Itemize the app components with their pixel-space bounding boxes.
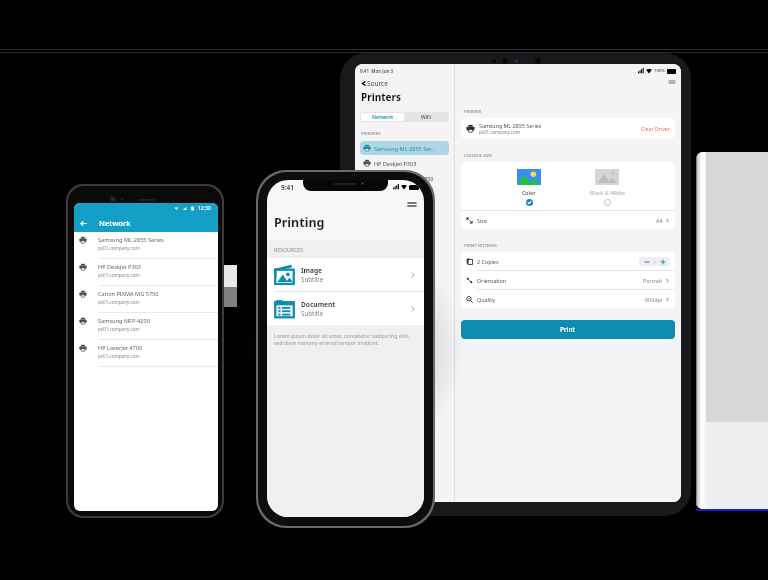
button[interactable]: Orientation	[461, 271, 675, 289]
button[interactable]: Black & White	[568, 162, 646, 206]
button[interactable]: Clear Driver	[641, 125, 670, 132]
staticText: A4	[656, 217, 663, 224]
staticText: 9:41	[281, 183, 294, 192]
button[interactable]: Canon PIXMA MG 5750	[360, 171, 449, 185]
button[interactable]: Decrease copies	[639, 257, 654, 266]
staticText: Lorem ipsum dolor sit amet, consetetur s…	[274, 332, 410, 346]
button[interactable]: Increase copies	[655, 257, 670, 266]
button[interactable]: Document	[267, 292, 424, 325]
staticText: ps01.company.com	[98, 353, 140, 359]
staticText: Black & White	[590, 189, 625, 196]
button[interactable]: HP DeskJet P303	[74, 259, 218, 285]
button[interactable]: Size	[461, 211, 675, 229]
staticText: HP LaserJet 4700	[98, 344, 143, 352]
staticText: Printers	[361, 90, 401, 104]
staticText: ps01.company.com	[479, 129, 520, 135]
staticText: 12:30	[198, 205, 211, 212]
staticText: Samsung ML-2855 Series	[98, 236, 164, 244]
button[interactable]: Back	[77, 217, 89, 229]
button[interactable]: Print	[461, 320, 675, 339]
staticText: PRINT SETTINGS	[464, 243, 497, 249]
staticText: Subtitle	[301, 275, 324, 283]
staticText: Samsung ML-2855 Series	[479, 122, 542, 129]
staticText: Canon PIXMA MG 5750	[374, 175, 434, 182]
staticText: Color	[522, 189, 536, 196]
button[interactable]: Network	[361, 113, 404, 121]
staticText: COLOR & SIZE	[464, 153, 492, 159]
staticText: Quality	[477, 296, 496, 303]
staticText: 600dpi	[645, 296, 663, 303]
button[interactable]: Samsung ML-2855 Series	[461, 118, 675, 139]
staticText: Print	[560, 325, 576, 334]
button[interactable]: HP LaserJet 4700	[74, 340, 218, 366]
staticText: Image	[301, 266, 323, 275]
staticText: HP DeskJet P303	[98, 263, 142, 271]
button[interactable]: Source	[360, 79, 388, 88]
staticText: Samsung MFP-4200	[98, 317, 150, 325]
staticText: Size	[477, 217, 487, 224]
staticText: Network	[99, 218, 131, 228]
button[interactable]: WiFi	[404, 113, 448, 121]
staticText: ps01.company.com	[98, 299, 140, 305]
staticText: Network	[372, 114, 394, 121]
staticText: PRINTERS	[361, 131, 381, 137]
staticText: Samsung ML-2855 Ser...	[374, 145, 436, 152]
button[interactable]: More options	[667, 77, 676, 86]
button[interactable]: Canon PIXMA MG 5750	[74, 286, 218, 312]
button[interactable]: HP DeskJet P303	[360, 156, 449, 170]
staticText: 100%	[654, 68, 665, 74]
staticText: ps01.company.com	[98, 245, 140, 251]
staticText: HP DeskJet P303	[374, 160, 417, 167]
staticText: 2 Copies	[477, 258, 499, 265]
staticText: 9:41 Mon Jun 3	[360, 68, 394, 74]
staticText: Portrait	[643, 277, 663, 284]
button[interactable]: Image	[267, 258, 424, 291]
button[interactable]: Menu	[406, 198, 418, 210]
button[interactable]: 2 Copies	[461, 252, 675, 270]
button[interactable]: Color	[490, 162, 568, 206]
button[interactable]: Samsung MFP-4200	[74, 313, 218, 339]
staticText: ps01.company.com	[98, 272, 140, 278]
staticText: ps01.company.com	[98, 326, 140, 332]
staticText: Printing	[274, 214, 325, 231]
staticText: Orientation	[477, 277, 507, 284]
staticText: RESOURCES	[274, 246, 304, 253]
staticText: Source	[367, 79, 388, 88]
staticText: Subtitle	[301, 309, 324, 317]
staticText: PRINTER	[464, 109, 482, 115]
button[interactable]: Samsung ML-2855 Ser...	[360, 141, 449, 155]
button[interactable]: Samsung ML-2855 Series	[74, 232, 218, 258]
staticText: Canon PIXMA MG 5750	[98, 290, 159, 298]
staticText: Document	[301, 300, 336, 309]
staticText: WiFi	[421, 114, 432, 121]
button[interactable]: Quality	[461, 290, 675, 308]
